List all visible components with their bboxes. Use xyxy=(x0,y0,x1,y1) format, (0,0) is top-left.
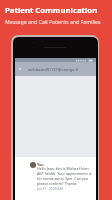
staticText: webbased91137@orange.fr xyxy=(28,67,79,72)
button[interactable]: Back xyxy=(17,66,23,72)
staticText: Message and Call Patients and Families xyxy=(5,18,101,25)
staticText: Hello Jean, this is Michael from AKP hea… xyxy=(37,166,92,186)
staticText: Patient Communication xyxy=(5,5,98,16)
staticText: Jan 21 · 10:30 AM xyxy=(37,187,63,191)
staticText: You xyxy=(37,162,44,167)
